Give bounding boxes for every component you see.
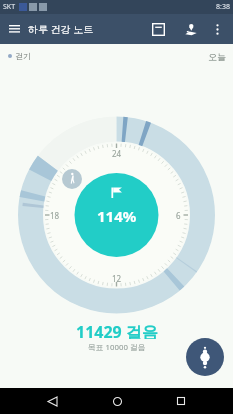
staticText: 걷기 [15,51,31,61]
button[interactable]: Back [39,388,65,414]
staticText: 6 [176,210,181,220]
button[interactable]: Calendar [146,17,170,41]
staticText: 18 [50,210,60,220]
staticText: 12 [112,273,122,283]
button[interactable]: Home [104,388,130,414]
button[interactable]: Options [186,338,224,376]
button[interactable]: More options [207,19,227,39]
button[interactable]: Map [178,17,202,41]
staticText: 목표 10000 걸음 [88,342,146,353]
staticText: 114% [97,206,137,224]
staticText: 24 [112,148,122,158]
button[interactable]: Menu [4,18,25,39]
button[interactable]: Walking category [4,50,16,62]
button[interactable]: Recents [168,388,194,414]
staticText: 11429 걸음 [76,321,158,339]
button[interactable]: 오늘 [208,44,226,68]
staticText: 오늘 [208,51,226,62]
staticText: SKT [3,2,16,12]
staticText: 8:38 [216,2,230,12]
staticText: 하루 건강 노트 [28,22,94,36]
